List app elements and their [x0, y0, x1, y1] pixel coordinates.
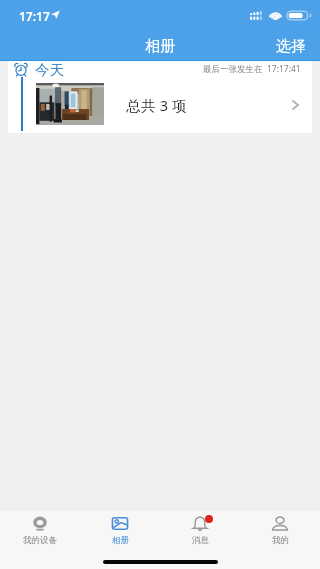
staticText: 相册: [145, 37, 175, 56]
staticText: 我的: [272, 535, 289, 546]
staticText: 17:17: [19, 8, 50, 24]
button[interactable]: 选择: [262, 32, 320, 61]
staticText: 最后一张发生在 17:17:41: [203, 63, 301, 75]
staticText: 我的设备: [23, 535, 57, 546]
staticText: 今天: [35, 61, 64, 79]
staticText: 总共 3 项: [126, 95, 188, 115]
button[interactable]: 我的设备: [0, 511, 80, 546]
button[interactable]: 相册: [80, 511, 160, 546]
button[interactable]: 总共 3 项: [8, 78, 312, 133]
staticText: 选择: [276, 37, 306, 56]
staticText: 相册: [112, 535, 129, 546]
staticText: 消息: [192, 535, 209, 546]
button[interactable]: 我的: [240, 511, 320, 546]
button[interactable]: 消息: [160, 511, 240, 546]
